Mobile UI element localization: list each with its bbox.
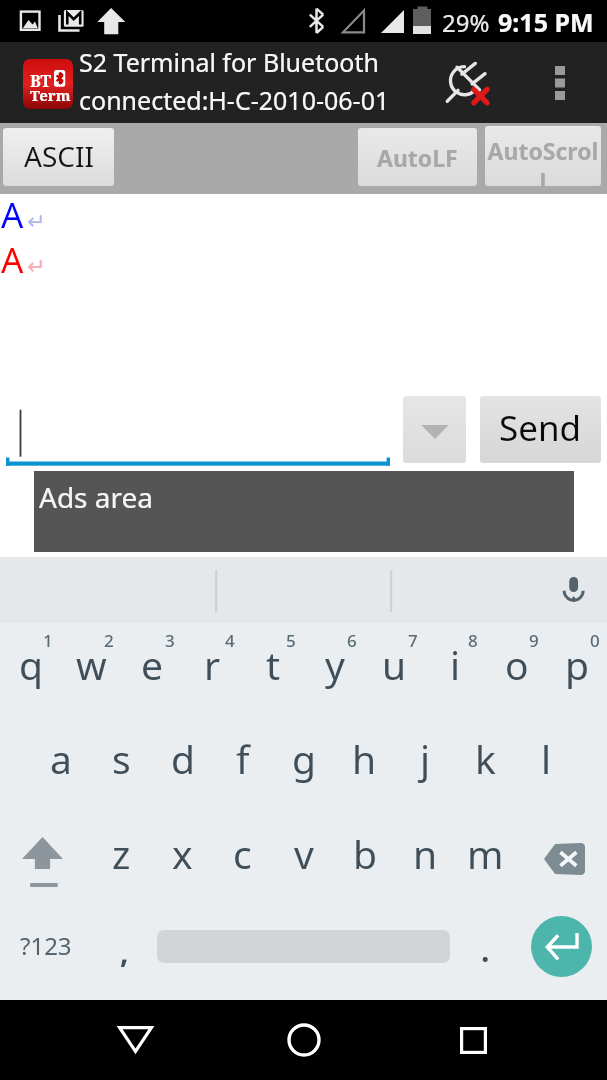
button[interactable]: Home <box>264 1000 344 1080</box>
staticText: g <box>292 732 316 785</box>
button[interactable]: AutoLF <box>358 128 477 186</box>
staticText: w <box>76 638 107 691</box>
button[interactable]: Back <box>95 1000 175 1080</box>
staticText: a <box>50 732 72 785</box>
button[interactable]: q <box>0 623 61 717</box>
staticText: z <box>112 827 131 880</box>
staticText: d <box>171 732 195 785</box>
button[interactable]: ASCII <box>3 128 114 186</box>
button[interactable]: , <box>91 906 157 1000</box>
button[interactable]: u <box>364 623 425 717</box>
staticText: r <box>204 638 221 691</box>
staticText: Term <box>30 85 71 105</box>
staticText: 8 <box>468 629 478 649</box>
button[interactable]: w <box>61 623 122 717</box>
staticText: n <box>413 827 438 880</box>
button[interactable]: p <box>546 623 607 717</box>
button[interactable]: Show history <box>403 396 466 463</box>
staticText: BT <box>30 70 51 92</box>
button[interactable]: Backspace <box>516 812 607 906</box>
button[interactable]: z <box>91 812 152 906</box>
staticText: v <box>294 827 314 880</box>
staticText: . <box>481 930 490 971</box>
button[interactable]: l <box>516 717 577 811</box>
staticText: p <box>565 638 589 691</box>
staticText: t <box>266 638 281 691</box>
button[interactable]: h <box>334 717 395 811</box>
staticText: ?123 <box>20 929 72 962</box>
staticText: e <box>141 638 163 691</box>
staticText: A <box>1 236 24 284</box>
staticText: connected:H-C-2010-06-01 <box>79 83 390 117</box>
staticText: 9 <box>529 629 539 649</box>
staticText: 5 <box>286 629 296 649</box>
button[interactable]: m <box>455 812 516 906</box>
staticText: h <box>352 732 377 785</box>
staticText: 2 <box>104 629 114 649</box>
button[interactable]: i <box>425 623 486 717</box>
button[interactable]: Enter <box>531 916 592 977</box>
button[interactable]: Send <box>480 396 601 463</box>
button[interactable]: j <box>395 717 456 811</box>
button[interactable]: v <box>273 812 334 906</box>
staticText: j <box>420 732 431 785</box>
staticText: k <box>475 732 496 785</box>
staticText: 4 <box>225 629 235 649</box>
staticText: y <box>325 638 345 691</box>
button[interactable]: x <box>152 812 213 906</box>
button[interactable]: b <box>334 812 395 906</box>
button[interactable]: r <box>182 623 243 717</box>
button[interactable]: e <box>121 623 182 717</box>
staticText: , <box>120 931 129 972</box>
staticText: x <box>172 827 193 880</box>
staticText: m <box>467 827 504 880</box>
staticText: q <box>19 638 43 691</box>
button[interactable]: Recent apps <box>433 1000 513 1080</box>
button[interactable]: Voice input <box>541 557 607 623</box>
button[interactable]: ?123 <box>0 906 91 1000</box>
button[interactable]: Shift <box>0 812 91 906</box>
staticText: ASCII <box>24 137 94 175</box>
button[interactable]: t <box>243 623 304 717</box>
staticText: AutoScroll <box>485 135 601 186</box>
staticText: 3 <box>165 629 175 649</box>
staticText: 1 <box>43 629 53 649</box>
button[interactable]: n <box>395 812 456 906</box>
button[interactable]: Disconnect <box>437 44 505 125</box>
button[interactable]: d <box>152 717 213 811</box>
staticText: Send <box>499 404 582 452</box>
staticText: ↵ <box>27 209 46 235</box>
staticText: 29% <box>442 6 490 39</box>
staticText: l <box>541 732 552 785</box>
button[interactable]: y <box>304 623 365 717</box>
staticText: c <box>233 827 252 880</box>
staticText: Ads area <box>39 478 154 516</box>
staticText: u <box>382 638 407 691</box>
button[interactable]: o <box>486 623 547 717</box>
staticText: 6 <box>347 629 357 649</box>
staticText: 9:15 PM <box>498 5 594 39</box>
staticText: A <box>1 191 24 239</box>
staticText: 7 <box>408 629 418 649</box>
button[interactable]: f <box>212 717 273 811</box>
button[interactable]: More options <box>530 42 592 123</box>
staticText: o <box>505 638 529 691</box>
staticText: AutoLF <box>377 142 458 173</box>
button[interactable]: AutoScroll <box>485 126 601 186</box>
staticText: ↵ <box>27 254 46 280</box>
staticText: s <box>112 732 131 785</box>
button[interactable]: c <box>212 812 273 906</box>
button[interactable]: k <box>455 717 516 811</box>
staticText: 0 <box>590 629 600 649</box>
button[interactable]: g <box>273 717 334 811</box>
staticText: i <box>450 638 461 691</box>
staticText: f <box>236 732 250 785</box>
button[interactable]: a <box>30 717 91 811</box>
staticText: b <box>353 827 377 880</box>
staticText: S2 Terminal for Bluetooth <box>79 45 379 79</box>
button[interactable]: s <box>91 717 152 811</box>
button[interactable]: . <box>450 906 520 1000</box>
